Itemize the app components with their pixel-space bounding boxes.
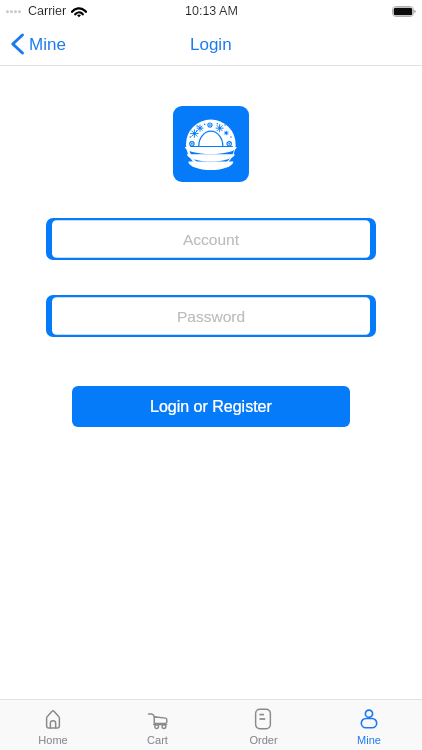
staticText: Cart [147,734,168,746]
button[interactable]: Mine [316,700,422,750]
staticText: Login [190,35,232,54]
button[interactable]: Login or Register [72,386,350,427]
staticText: Order [249,734,278,746]
button[interactable]: Mine [11,33,66,55]
staticText: Password [177,308,246,325]
staticText: Login or Register [150,398,272,416]
button[interactable]: Password [46,295,376,337]
other: Battery full [392,6,416,17]
staticText: Mine [357,734,381,746]
staticText: Home [38,734,68,746]
staticText: Mine [29,35,66,54]
button[interactable]: Home [0,700,105,750]
button[interactable]: Order [210,700,316,750]
button[interactable]: Account [46,218,376,260]
staticText: Account [183,231,240,248]
staticText: Carrier [28,4,67,18]
staticText: 10:13 AM [185,4,238,18]
button[interactable]: Cart [105,700,210,750]
